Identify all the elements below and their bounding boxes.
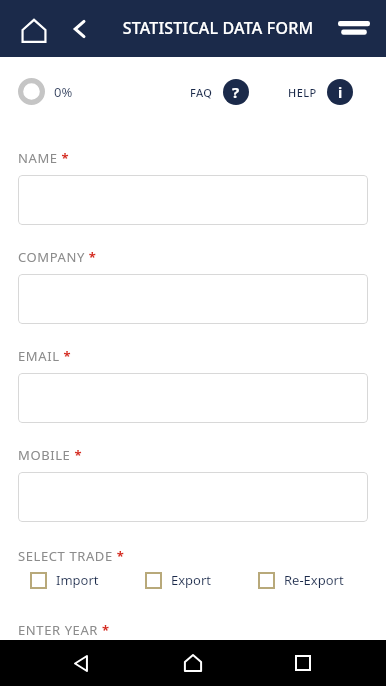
staticText: COMPANY * (18, 248, 97, 266)
staticText: FAQ (190, 85, 213, 100)
staticText: i (338, 83, 343, 102)
staticText: MOBILE * (18, 446, 83, 464)
staticText: SELECT TRADE * (18, 547, 125, 565)
button[interactable] (18, 373, 368, 423)
staticText: HELP (288, 85, 317, 100)
staticText: STATISTICAL DATA FORM (104, 17, 332, 39)
button[interactable]: Home (178, 648, 208, 678)
button[interactable] (18, 175, 368, 225)
button[interactable]: Back (62, 11, 98, 47)
staticText: ? (232, 82, 240, 102)
button[interactable]: Export (145, 571, 212, 589)
button[interactable]: Back (66, 648, 96, 678)
staticText: ENTER YEAR * (18, 621, 110, 639)
button[interactable]: HELP (288, 79, 353, 105)
button[interactable]: Import (30, 571, 99, 589)
staticText: Import (56, 571, 99, 589)
button[interactable]: 0% (18, 78, 73, 105)
button[interactable]: FAQ (190, 79, 249, 105)
staticText: Re-Export (284, 571, 344, 589)
staticText: EMAIL * (18, 347, 72, 365)
button[interactable] (18, 472, 368, 522)
staticText: 0% (54, 83, 73, 101)
button[interactable]: Home (14, 11, 54, 51)
button[interactable] (18, 274, 368, 324)
button[interactable]: Menu (334, 12, 374, 46)
staticText: Export (171, 571, 212, 589)
staticText: NAME * (18, 149, 70, 167)
button[interactable]: Recent apps (288, 648, 318, 678)
button[interactable]: Re-Export (258, 571, 344, 589)
